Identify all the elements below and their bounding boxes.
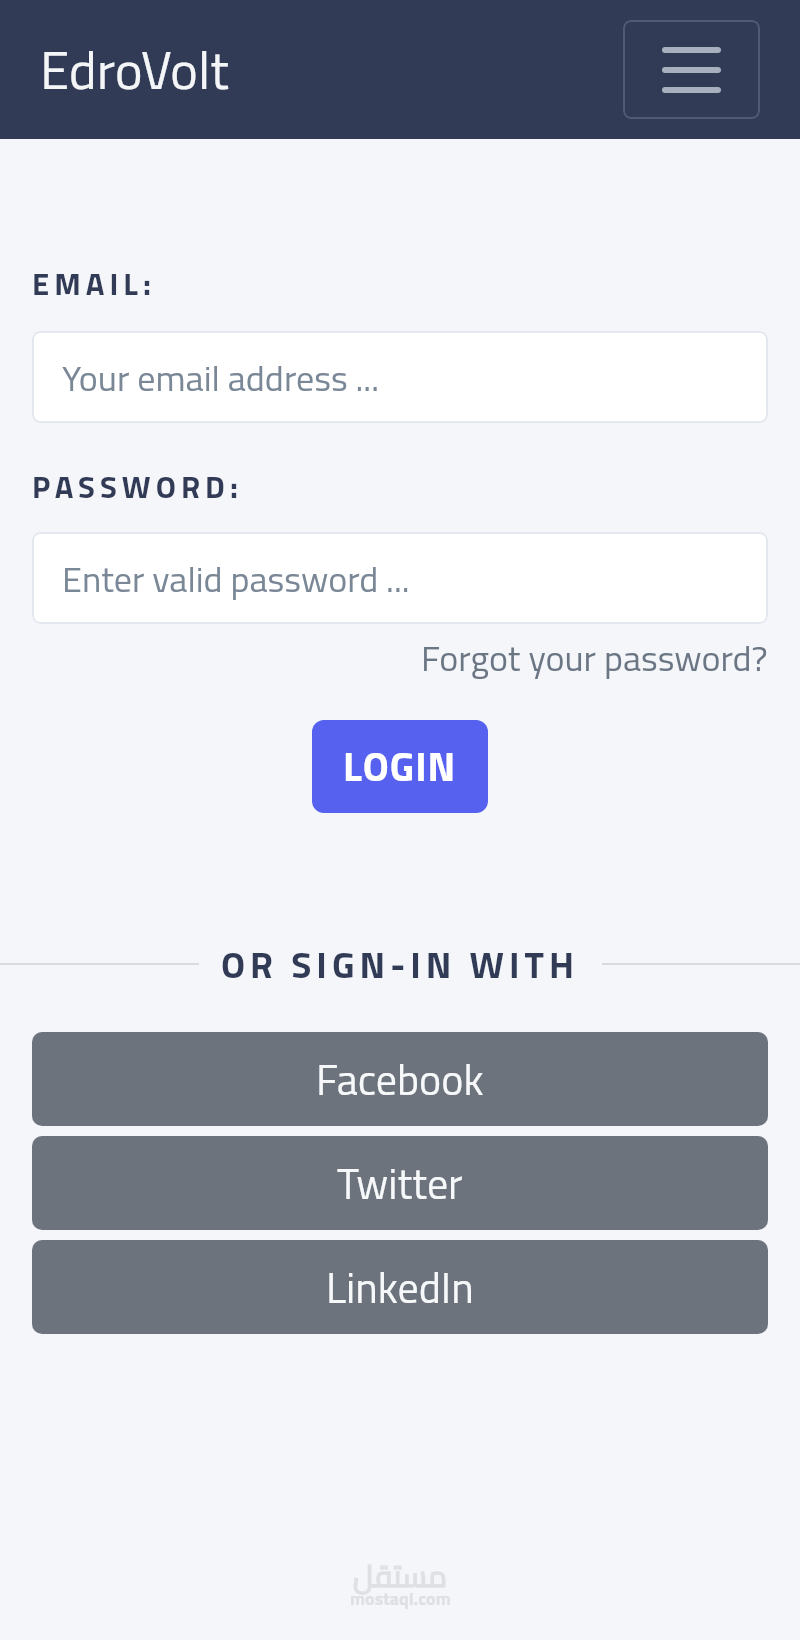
button[interactable]: Facebook (32, 1032, 768, 1126)
staticText: mostaql.com (350, 1585, 451, 1612)
staticText: Facebook (316, 1047, 484, 1111)
staticText: LinkedIn (326, 1255, 474, 1319)
staticText: Enter valid password ... (62, 551, 410, 606)
button[interactable]: Your email address ... (32, 331, 768, 423)
button[interactable]: LOGIN (312, 720, 488, 813)
staticText: OR SIGN-IN WITH (221, 936, 580, 992)
staticText: EMAIL: (32, 260, 156, 307)
staticText: Your email address ... (62, 350, 379, 405)
staticText: EdroVolt (40, 29, 229, 110)
staticText: مستقل (353, 1548, 448, 1604)
button[interactable]: Enter valid password ... (32, 532, 768, 624)
button[interactable]: Twitter (32, 1136, 768, 1230)
button[interactable]: Forgot your password? (421, 630, 768, 685)
button[interactable] (623, 20, 760, 119)
staticText: Twitter (337, 1151, 463, 1215)
staticText: LOGIN (343, 736, 457, 797)
button[interactable]: LinkedIn (32, 1240, 768, 1334)
staticText: PASSWORD: (32, 463, 243, 510)
